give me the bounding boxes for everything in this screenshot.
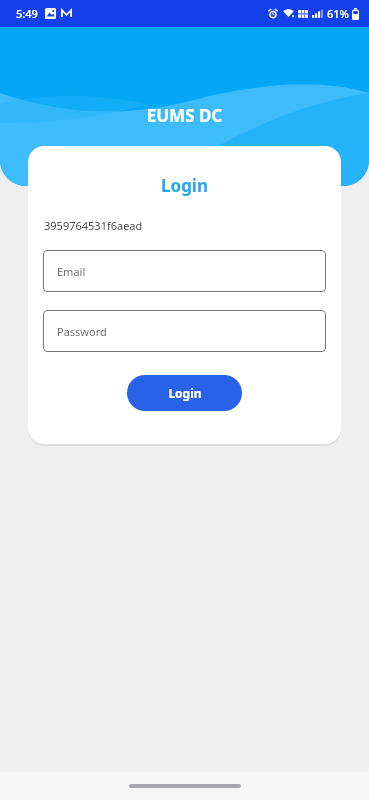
- staticText: Login: [168, 385, 202, 401]
- staticText: Password: [57, 324, 107, 339]
- button[interactable]: Email: [43, 250, 326, 292]
- staticText: 61%: [327, 6, 349, 21]
- staticText: Email: [57, 264, 86, 279]
- button[interactable]: Login: [127, 375, 242, 411]
- staticText: 5:49: [16, 6, 38, 21]
- staticText: EUMS DC: [0, 104, 369, 127]
- button[interactable]: Password: [43, 310, 326, 352]
- staticText: Login: [28, 174, 341, 197]
- staticText: 3959764531f6aead: [44, 218, 143, 233]
